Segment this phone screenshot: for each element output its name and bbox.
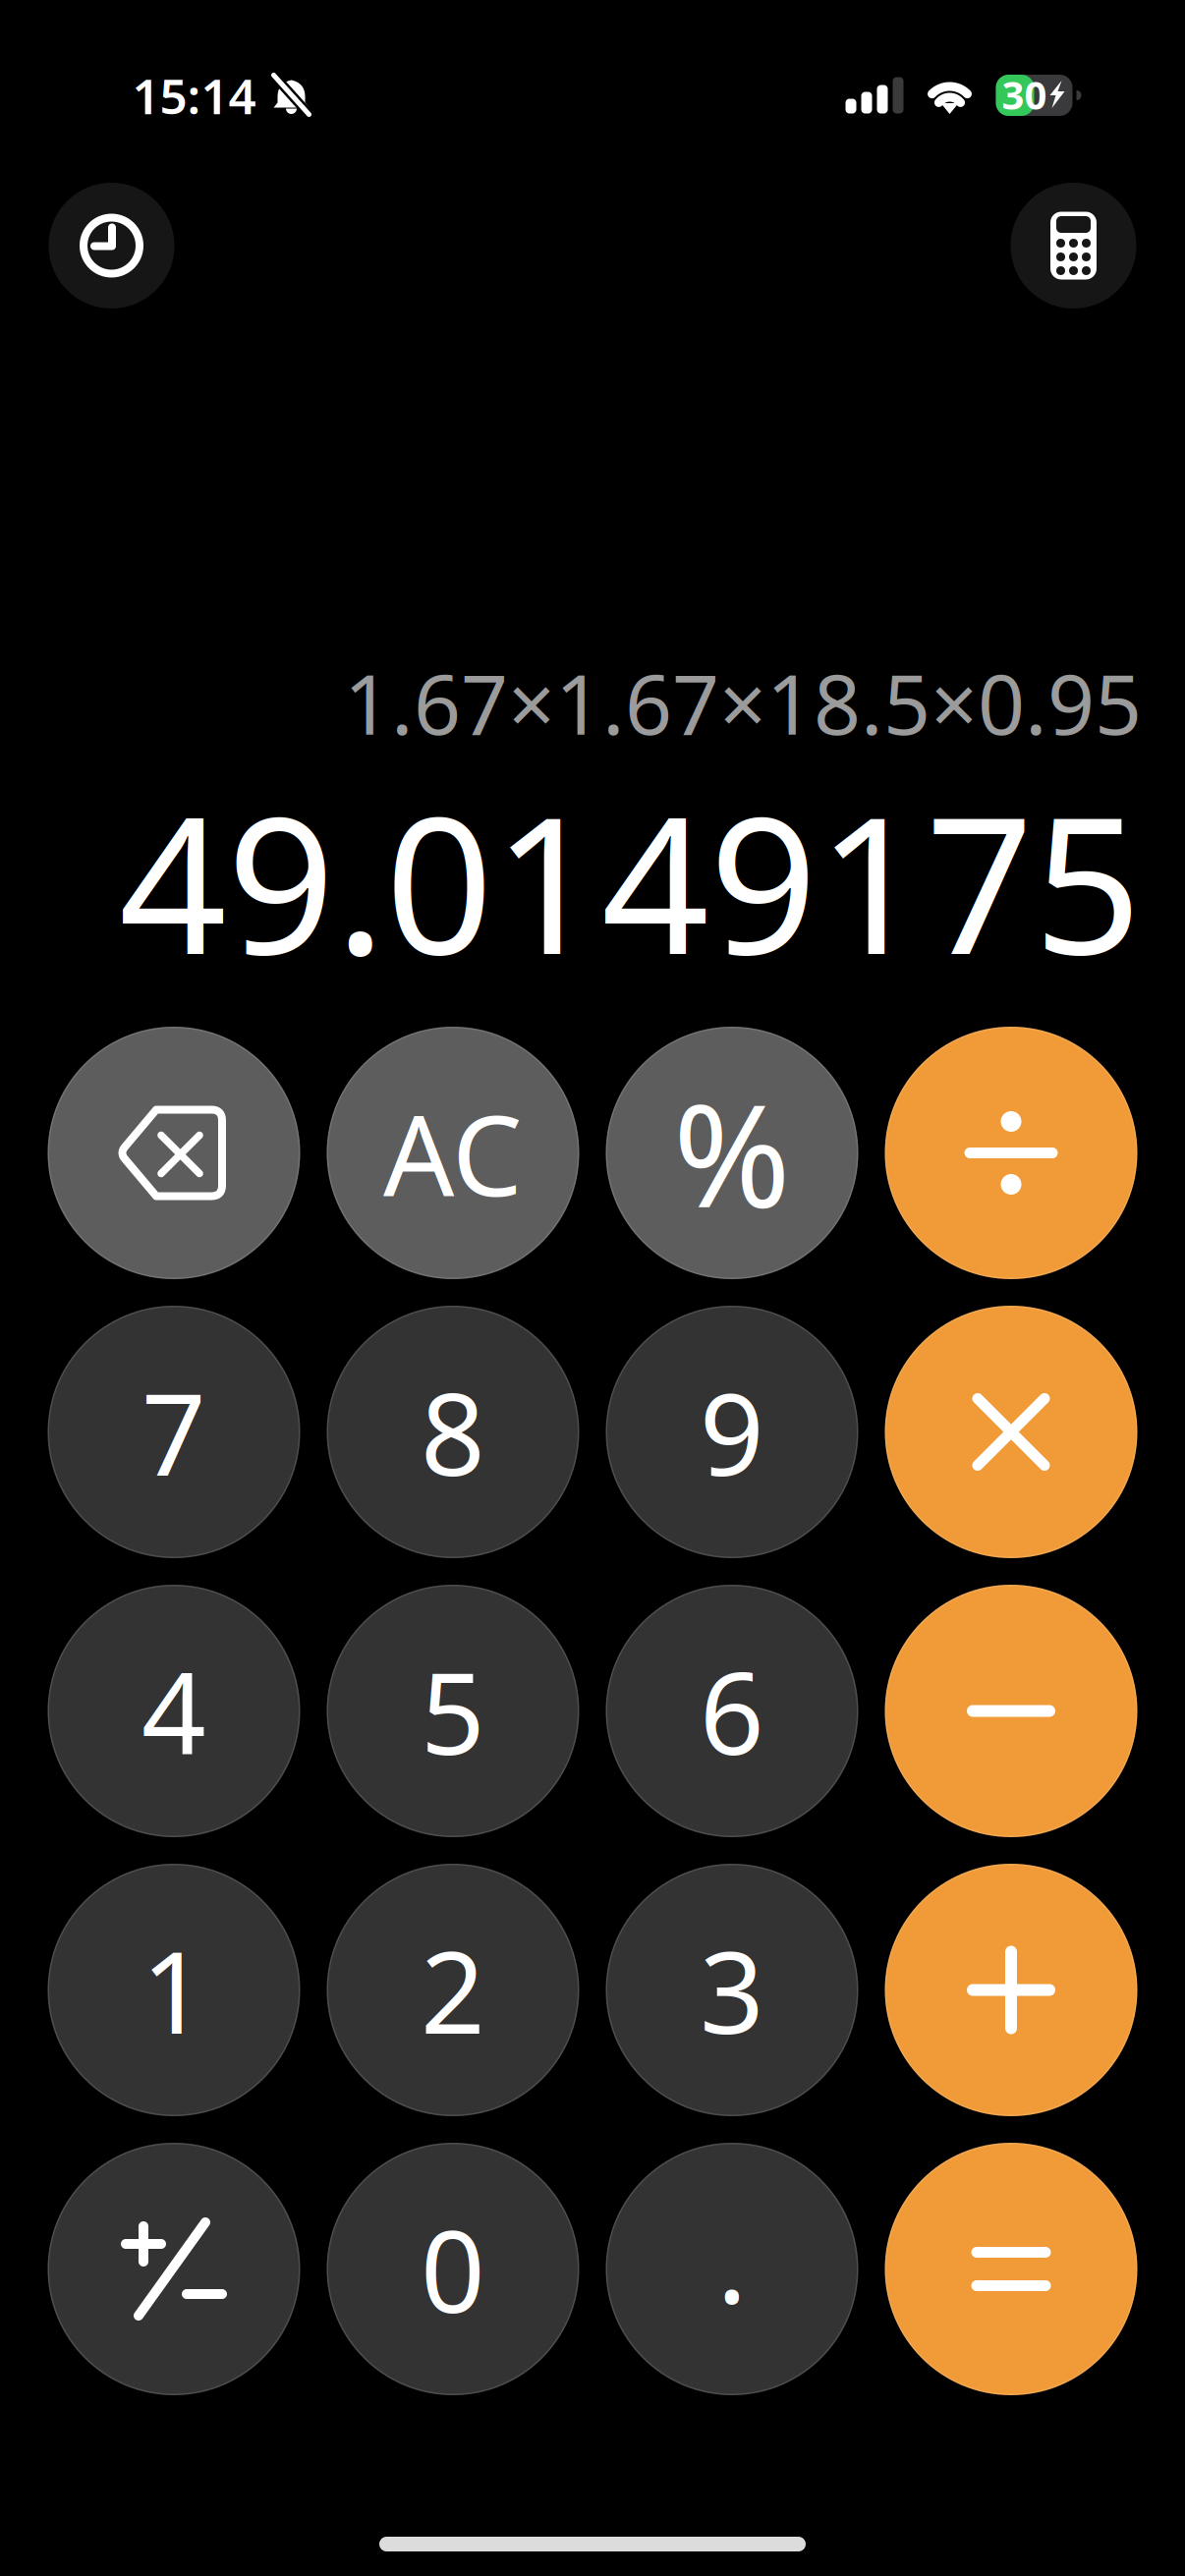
staticText: 7 [141,1357,206,1507]
button[interactable]: 9 [606,1306,858,1558]
button[interactable]: 3 [606,1864,858,2116]
button[interactable]: 5 [327,1585,579,1837]
button[interactable]: 4 [48,1585,300,1837]
staticText: 3 [700,1915,764,2065]
button[interactable]: 7 [48,1306,300,1558]
staticText: 15:14 [132,63,256,127]
staticText: . [717,2184,747,2334]
button[interactable]: Subtract [885,1585,1137,1837]
button[interactable]: Plus minus [48,2143,300,2395]
button[interactable]: 1 [48,1864,300,2116]
button[interactable]: Equals [885,2143,1137,2395]
button[interactable]: History [49,183,174,308]
staticText: % [673,1059,791,1247]
staticText: AC [383,1079,523,1227]
button[interactable]: 8 [327,1306,579,1558]
button[interactable]: 2 [327,1864,579,2116]
staticText: 0 [421,2194,485,2344]
staticText: 9 [700,1357,764,1507]
button[interactable]: 6 [606,1585,858,1837]
staticText: 2 [421,1915,485,2065]
staticText: 1 [141,1915,206,2065]
staticText: 4 [141,1636,206,1786]
button[interactable]: Divide [885,1027,1137,1279]
staticText: 8 [421,1357,485,1507]
staticText: 30 [1002,68,1047,120]
button[interactable]: AC [327,1027,579,1279]
button[interactable]: Multiply [885,1306,1137,1558]
staticText: 49.0149175 [119,756,1142,1006]
button[interactable]: Delete [48,1027,300,1279]
button[interactable]: % [606,1027,858,1279]
button[interactable]: Calculator [1011,183,1136,308]
button[interactable]: Add [885,1864,1137,2116]
staticText: 6 [700,1636,764,1786]
staticText: 1.67×1.67×18.5×0.95 [344,648,1142,757]
button[interactable]: 0 [327,2143,579,2395]
button[interactable]: . [606,2143,858,2395]
staticText: 5 [421,1636,485,1786]
